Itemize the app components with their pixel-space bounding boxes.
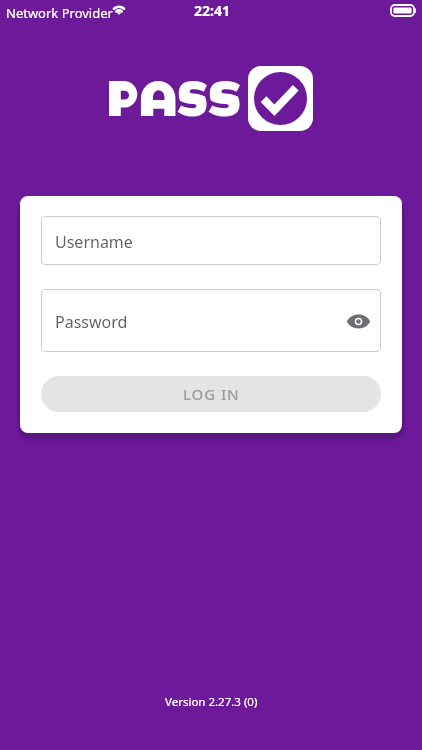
- staticText: 22:41: [194, 1, 230, 20]
- staticText: Version 2.27.3 (0): [165, 694, 258, 710]
- button[interactable]: LOG IN: [41, 376, 381, 412]
- staticText: Username: [55, 231, 133, 253]
- staticText: Password: [55, 311, 128, 333]
- staticText: LOG IN: [183, 384, 240, 404]
- staticText: Network Provider: [6, 4, 113, 22]
- button[interactable]: Username: [41, 216, 381, 265]
- button[interactable]: Show password: [343, 306, 373, 336]
- button[interactable]: Password: [41, 289, 381, 352]
